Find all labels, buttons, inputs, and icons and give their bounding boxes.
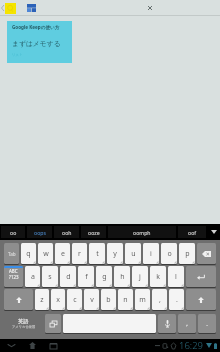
- button[interactable]: Space: [63, 314, 156, 333]
- button[interactable]: y: [107, 243, 123, 264]
- button[interactable]: w: [38, 243, 53, 264]
- button[interactable]: j: [132, 266, 148, 287]
- staticText: p: [185, 249, 190, 259]
- button[interactable]: oops: [27, 226, 52, 238]
- staticText: f: [85, 272, 88, 282]
- button[interactable]: Tab: [4, 243, 19, 264]
- button[interactable]: ,: [178, 314, 196, 333]
- button[interactable]: Tab: [26, 3, 36, 13]
- button[interactable]: t: [89, 243, 105, 264]
- staticText: q: [26, 249, 31, 259]
- staticText: e: [61, 249, 65, 259]
- staticText: k: [156, 272, 160, 282]
- button[interactable]: oomph: [108, 226, 176, 238]
- staticText: ooze: [88, 229, 100, 236]
- button[interactable]: u: [125, 243, 141, 264]
- button[interactable]: Close tab: [142, 0, 158, 16]
- staticText: t: [96, 249, 99, 259]
- staticText: oof: [188, 229, 197, 236]
- button[interactable]: .: [169, 289, 184, 310]
- staticText: u: [131, 249, 136, 259]
- staticText: z: [40, 295, 44, 305]
- button[interactable]: Google Keep: [5, 3, 16, 14]
- button[interactable]: Switch input method: [45, 314, 61, 333]
- button[interactable]: c: [67, 289, 82, 310]
- button[interactable]: oof: [178, 226, 206, 238]
- staticText: .: [176, 295, 178, 305]
- button[interactable]: x: [51, 289, 65, 310]
- button[interactable]: 英語: [3, 318, 44, 329]
- staticText: Google Keepの使い方: [12, 24, 60, 30]
- button[interactable]: oo: [1, 226, 25, 238]
- staticText: j: [139, 272, 141, 282]
- button[interactable]: o: [161, 243, 177, 264]
- button[interactable]: f: [78, 266, 94, 287]
- staticText: Tab: [8, 251, 16, 257]
- staticText: a: [31, 272, 35, 282]
- staticText: ooh: [62, 229, 72, 236]
- button[interactable]: More suggestions: [207, 224, 220, 240]
- button[interactable]: Shift: [186, 289, 216, 310]
- staticText: w: [43, 249, 49, 259]
- staticText: c: [73, 295, 77, 305]
- button[interactable]: ooze: [81, 226, 106, 238]
- button[interactable]: Shift: [4, 289, 33, 310]
- staticText: r: [78, 249, 81, 259]
- button[interactable]: q: [21, 243, 36, 264]
- button[interactable]: n: [118, 289, 133, 310]
- staticText: ,: [159, 295, 161, 305]
- staticText: v: [90, 295, 94, 305]
- button[interactable]: s: [42, 266, 58, 287]
- button[interactable]: Google Keepの使い方: [7, 21, 72, 63]
- button[interactable]: a: [25, 266, 40, 287]
- staticText: oops: [34, 229, 46, 236]
- button[interactable]: b: [101, 289, 116, 310]
- button[interactable]: g: [96, 266, 112, 287]
- staticText: o: [167, 249, 172, 259]
- button[interactable]: h: [114, 266, 130, 287]
- staticText: n: [123, 295, 128, 305]
- staticText: h: [120, 272, 125, 282]
- staticText: x: [56, 295, 60, 305]
- staticText: アメリカ合衆国: [12, 325, 36, 329]
- button[interactable]: .: [198, 314, 216, 333]
- button[interactable]: p: [179, 243, 195, 264]
- staticText: m: [139, 295, 146, 305]
- button[interactable]: ooh: [54, 226, 79, 238]
- button[interactable]: Symbols: [4, 266, 23, 287]
- button[interactable]: Backspace: [197, 243, 216, 264]
- staticText: リスト: [12, 53, 23, 57]
- button[interactable]: z: [35, 289, 49, 310]
- button[interactable]: d: [60, 266, 76, 287]
- staticText: l: [175, 272, 177, 282]
- staticText: ,: [186, 320, 188, 328]
- staticText: s: [48, 272, 52, 282]
- button[interactable]: Home: [25, 339, 40, 352]
- staticText: y: [113, 249, 117, 259]
- staticText: oomph: [133, 229, 151, 236]
- staticText: 16:29: [179, 339, 204, 352]
- button[interactable]: l: [168, 266, 184, 287]
- button[interactable]: m: [135, 289, 150, 310]
- button[interactable]: Hide keyboard: [4, 339, 19, 352]
- staticText: d: [66, 272, 71, 282]
- staticText: .: [206, 320, 208, 328]
- staticText: 英語: [18, 318, 29, 325]
- button[interactable]: v: [84, 289, 99, 310]
- staticText: i: [150, 249, 152, 259]
- button[interactable]: Voice input: [158, 314, 176, 333]
- button[interactable]: i: [143, 243, 159, 264]
- staticText: ABC: [9, 268, 18, 274]
- button[interactable]: Recent apps: [46, 339, 61, 352]
- button[interactable]: Back: [0, 0, 5, 16]
- staticText: oo: [10, 229, 17, 236]
- staticText: ?123: [9, 274, 19, 280]
- staticText: b: [106, 295, 111, 305]
- staticText: まずはメモする: [12, 39, 61, 48]
- button[interactable]: ,: [152, 289, 167, 310]
- button[interactable]: r: [72, 243, 87, 264]
- button[interactable]: k: [150, 266, 166, 287]
- button[interactable]: e: [55, 243, 70, 264]
- button[interactable]: Enter: [186, 266, 216, 287]
- staticText: g: [102, 272, 107, 282]
